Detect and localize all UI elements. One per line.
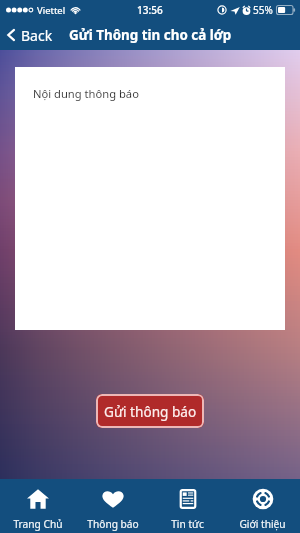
staticText: Tin tức xyxy=(171,517,204,531)
button[interactable]: Nội dung thông báo xyxy=(15,67,285,330)
staticText: Back xyxy=(21,26,53,45)
button[interactable]: Notifications xyxy=(75,479,150,533)
staticText: 55% xyxy=(253,3,273,17)
staticText: Gửi thông báo xyxy=(104,402,197,421)
staticText: 13:56 xyxy=(137,3,163,17)
button[interactable]: News xyxy=(150,479,225,533)
staticText: Nội dung thông báo xyxy=(33,86,139,101)
button[interactable]: Back xyxy=(5,20,300,50)
button[interactable]: Home xyxy=(0,479,75,533)
staticText: Trang Chủ xyxy=(13,517,63,531)
staticText: Gửi Thông tin cho cả lớp xyxy=(69,26,232,44)
button[interactable]: Gửi thông báo xyxy=(96,394,204,428)
button[interactable]: About xyxy=(225,479,300,533)
staticText: Giới thiệu xyxy=(239,517,286,531)
staticText: Thông báo xyxy=(87,517,139,531)
staticText: Viettel xyxy=(37,4,66,17)
